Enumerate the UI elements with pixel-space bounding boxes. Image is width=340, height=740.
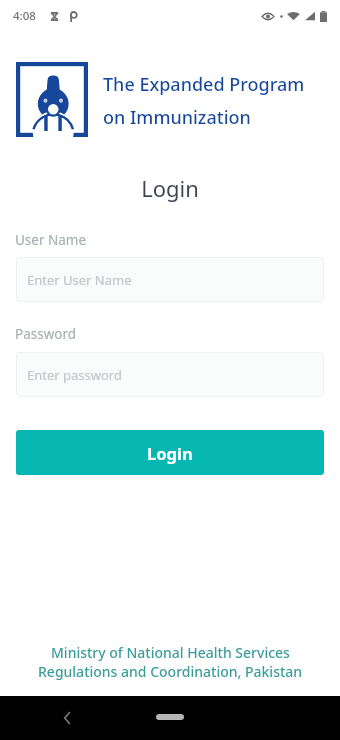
staticText: User Name <box>15 231 87 249</box>
button[interactable]: Login <box>16 430 324 475</box>
staticText: Login <box>147 442 193 464</box>
button[interactable]: Home <box>156 714 184 720</box>
staticText: The Expanded Program <box>103 72 305 97</box>
staticText: Login <box>0 173 340 203</box>
button[interactable]: Enter password <box>16 352 324 397</box>
button[interactable]: Back <box>55 706 79 730</box>
staticText: Password <box>15 325 77 343</box>
staticText: Enter User Name <box>27 271 132 289</box>
staticText: Regulations and Coordination, Pakistan <box>38 662 303 681</box>
staticText: Ministry of National Health Services <box>51 643 290 662</box>
staticText: on Immunization <box>103 105 251 130</box>
staticText: 4:08 <box>13 8 36 24</box>
button[interactable]: Enter User Name <box>16 257 324 302</box>
staticText: Enter password <box>27 366 122 384</box>
